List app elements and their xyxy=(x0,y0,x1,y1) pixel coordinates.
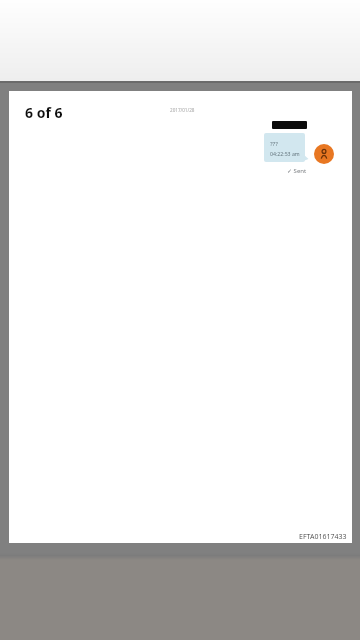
button[interactable]: 6 of 6 xyxy=(9,91,352,543)
staticText: 2017/01/28 xyxy=(170,107,195,113)
staticText: ??? xyxy=(270,140,278,148)
staticText: 6 of 6 xyxy=(25,103,63,122)
staticText: EFTA01617433 xyxy=(299,532,347,542)
button[interactable]: ✓ Sent xyxy=(287,167,307,175)
staticText: ✓ Sent xyxy=(287,167,307,175)
button[interactable]: Toolbar xyxy=(0,0,360,81)
staticText: 04:22:53 am xyxy=(270,150,300,157)
button[interactable]: ??? xyxy=(264,133,305,162)
button[interactable]: Contact avatar xyxy=(314,144,334,164)
